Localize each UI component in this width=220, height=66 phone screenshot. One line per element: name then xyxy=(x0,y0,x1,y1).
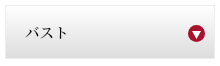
button[interactable]: Expand section xyxy=(188,25,205,42)
staticText: バスト xyxy=(25,21,69,42)
button[interactable]: バスト xyxy=(5,5,215,59)
